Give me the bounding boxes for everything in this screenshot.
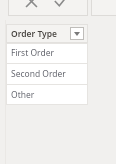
button[interactable]: Cancel bbox=[20, 0, 42, 12]
button[interactable]: Second Order bbox=[6, 64, 88, 84]
staticText: Other bbox=[11, 89, 35, 101]
staticText: First Order bbox=[11, 47, 54, 59]
button[interactable]: Open filter menu bbox=[70, 27, 84, 40]
button[interactable]: First Order bbox=[6, 43, 88, 63]
button[interactable]: Other bbox=[6, 85, 88, 105]
staticText: Second Order bbox=[11, 68, 66, 80]
button[interactable]: Confirm bbox=[50, 0, 72, 12]
staticText: Order Type bbox=[11, 28, 58, 40]
